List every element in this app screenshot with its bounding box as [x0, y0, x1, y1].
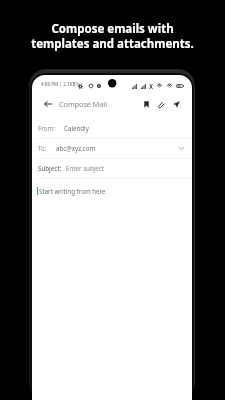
staticText: Compose emails with	[51, 21, 174, 37]
staticText: Calendly	[64, 124, 89, 132]
button[interactable]: Attach file	[152, 94, 168, 114]
button[interactable]: Expand recipients	[175, 138, 187, 158]
button[interactable]: Back	[39, 94, 57, 114]
button[interactable]: Send	[168, 94, 184, 114]
staticText: From:	[38, 124, 55, 132]
staticText: To:	[38, 144, 47, 152]
staticText: abc@xyz.com	[56, 144, 96, 152]
staticText: templates and attachments.	[31, 36, 194, 52]
staticText: Start writing from here	[39, 187, 106, 195]
staticText: Subject:	[38, 164, 62, 172]
staticText: 4:06 PM | 2.3KB/s	[41, 81, 80, 87]
button[interactable]: Save draft	[138, 94, 154, 114]
staticText: Enter subject	[66, 164, 105, 172]
staticText: Compose Mail	[59, 99, 108, 109]
